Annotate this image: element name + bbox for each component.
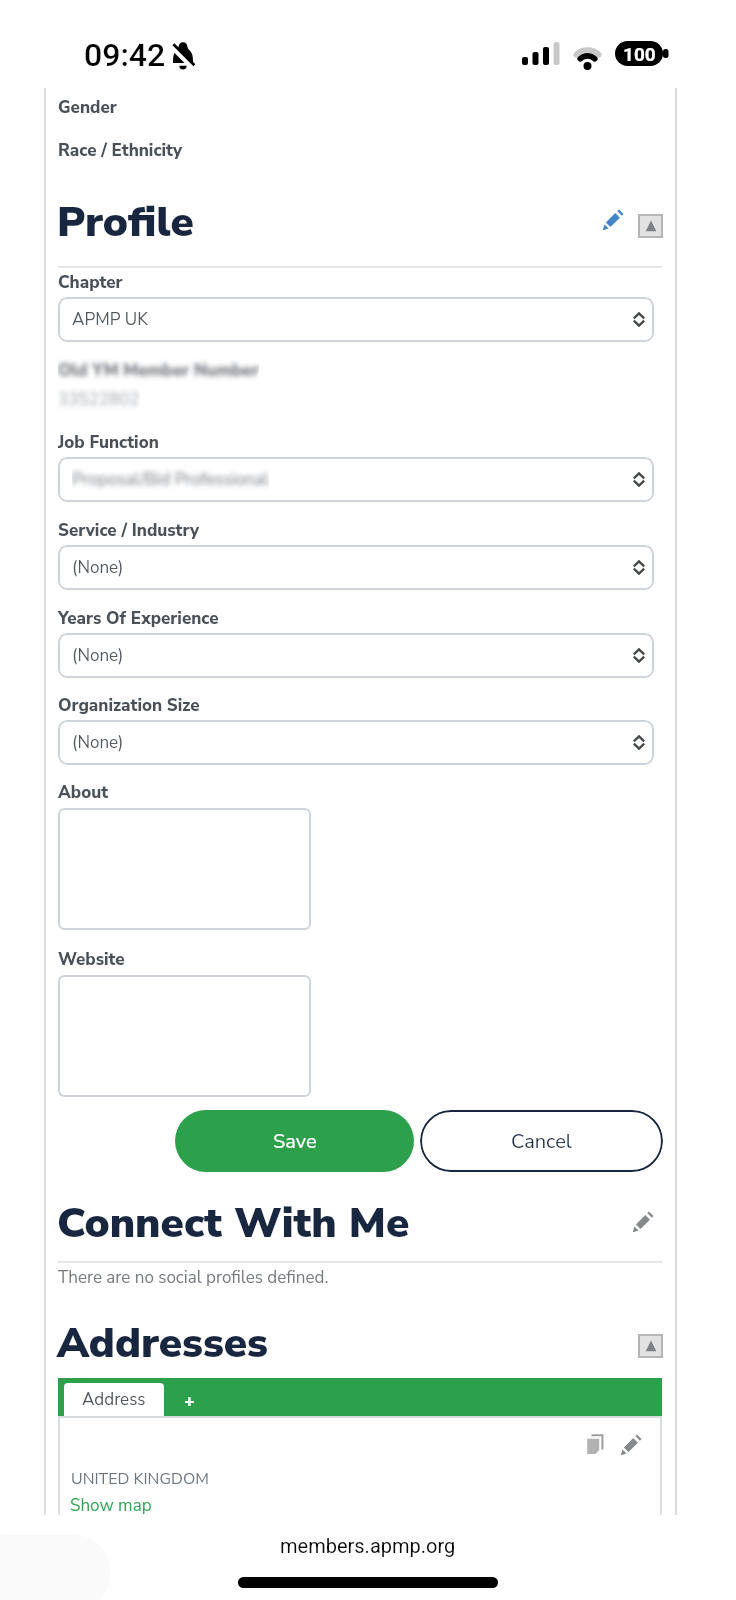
staticText: Gender	[58, 96, 117, 119]
staticText: UNITED KINGDOM	[71, 1468, 209, 1490]
staticText: Job Function	[58, 431, 159, 454]
staticText: Addresses	[57, 1315, 268, 1372]
staticText: Connect With Me	[57, 1195, 410, 1252]
staticText: Chapter	[58, 271, 123, 294]
staticText: +	[184, 1389, 195, 1414]
staticText: Address	[82, 1388, 146, 1411]
staticText: Proposal/Bid Professional	[72, 468, 269, 491]
staticText: Save	[273, 1128, 317, 1155]
staticText: Organization Size	[58, 694, 200, 717]
staticText: 33522802	[58, 388, 140, 411]
staticText: members.apmp.org	[280, 1534, 456, 1557]
staticText: 09:42	[84, 36, 166, 74]
staticText: Cancel	[511, 1128, 572, 1155]
staticText: Old YM Member Number	[58, 359, 259, 382]
staticText: 100	[623, 43, 656, 65]
staticText: There are no social profiles defined.	[58, 1266, 329, 1289]
staticText: (None)	[72, 644, 124, 667]
staticText: Profile	[57, 194, 194, 251]
staticText: About	[58, 781, 109, 804]
staticText: (None)	[72, 556, 124, 579]
staticText: APMP UK	[72, 308, 148, 331]
staticText: Race / Ethnicity	[58, 139, 183, 162]
staticText: Show map	[70, 1494, 152, 1517]
staticText: Years Of Experience	[58, 607, 219, 630]
staticText: Website	[58, 948, 125, 971]
staticText: (None)	[72, 731, 124, 754]
staticText: Service / Industry	[58, 519, 200, 542]
